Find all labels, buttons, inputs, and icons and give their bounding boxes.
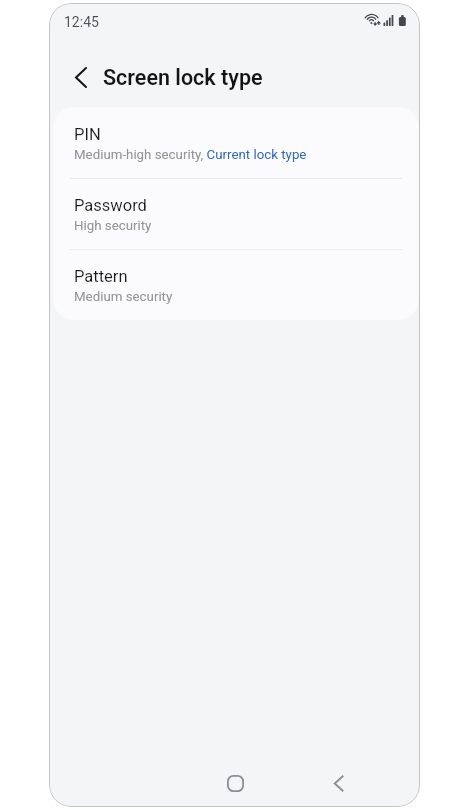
staticText: Pattern xyxy=(74,267,128,286)
staticText: Password xyxy=(74,196,147,215)
button[interactable]: Back xyxy=(321,765,357,801)
button[interactable]: Home xyxy=(217,765,253,801)
button[interactable]: Back xyxy=(58,54,104,100)
staticText: Medium-high security, Current lock type xyxy=(74,147,307,163)
button[interactable]: Password xyxy=(53,178,419,249)
button[interactable]: Pattern xyxy=(53,249,419,320)
staticText: PIN xyxy=(74,125,101,144)
staticText: Medium security xyxy=(74,289,173,305)
staticText: High security xyxy=(74,218,152,234)
button[interactable]: PIN xyxy=(53,107,419,178)
staticText: Screen lock type xyxy=(103,65,263,90)
staticText: 12:45 xyxy=(64,14,99,30)
